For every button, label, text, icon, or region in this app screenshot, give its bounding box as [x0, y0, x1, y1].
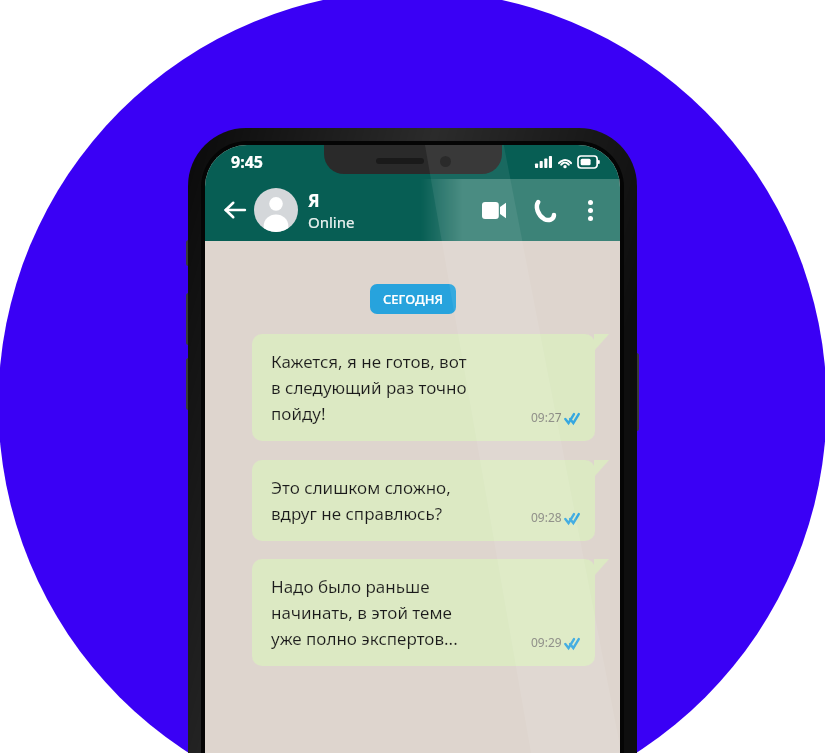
button[interactable]: Video call: [476, 192, 512, 228]
staticText: Online: [308, 212, 355, 232]
staticText: в следующий раз точно: [271, 376, 467, 399]
staticText: уже полно экспертов...: [271, 627, 458, 650]
button[interactable]: Надо было раньше: [252, 559, 609, 666]
staticText: Я: [308, 189, 320, 212]
button[interactable]: Voice call: [526, 192, 562, 228]
button[interactable]: СЕГОДНЯ: [370, 284, 456, 314]
staticText: пойду!: [271, 402, 326, 425]
staticText: Это слишком сложно,: [271, 476, 451, 499]
staticText: вдруг не справлюсь?: [271, 502, 443, 525]
button[interactable]: More options: [574, 194, 606, 226]
button[interactable]: Кажется, я не готов, вот: [252, 334, 609, 441]
button[interactable]: Profile photo: [254, 188, 298, 232]
staticText: 09:28: [531, 509, 562, 525]
staticText: Кажется, я не готов, вот: [271, 350, 467, 373]
staticText: 09:29: [531, 634, 562, 650]
staticText: СЕГОДНЯ: [383, 290, 443, 308]
staticText: Надо было раньше: [271, 575, 430, 598]
staticText: 9:45: [231, 151, 263, 173]
staticText: 09:27: [531, 409, 562, 425]
button[interactable]: Я: [308, 189, 355, 232]
staticText: начинать, в этой теме: [271, 601, 452, 624]
button[interactable]: Это слишком сложно,: [252, 460, 609, 541]
button[interactable]: Back: [218, 193, 252, 227]
